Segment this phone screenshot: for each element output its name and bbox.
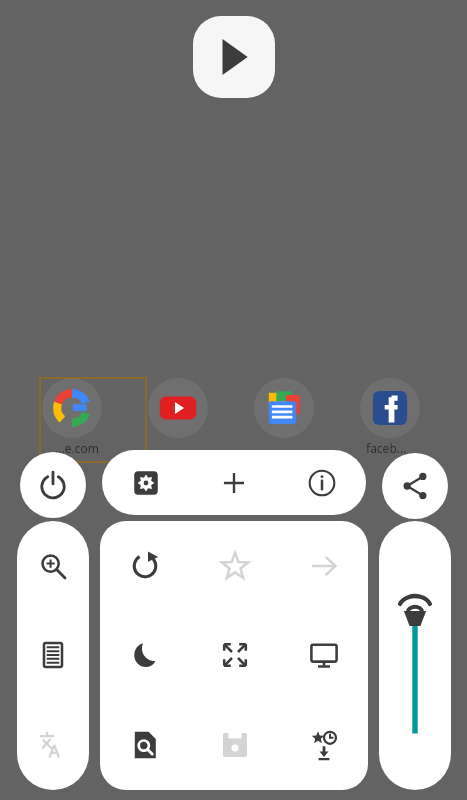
button[interactable]: Reader mode: [17, 610, 89, 700]
button[interactable]: Forward: [279, 521, 368, 610]
staticText: ...e.com: [55, 440, 99, 456]
button[interactable]: Zoom in: [17, 521, 89, 610]
button[interactable]: App: [42, 378, 102, 438]
button[interactable]: Desktop site: [279, 610, 368, 700]
button[interactable]: Bookmark: [190, 521, 279, 610]
button[interactable]: Brightness slider: [379, 521, 451, 790]
button[interactable]: Play Store: [193, 16, 275, 98]
button[interactable]: Reload: [100, 521, 190, 610]
button[interactable]: New tab: [190, 450, 278, 515]
button[interactable]: History and downloads: [279, 700, 368, 790]
button[interactable]: Translate: [17, 700, 89, 790]
button[interactable]: Find in page: [100, 700, 190, 790]
button[interactable]: App: [254, 378, 314, 438]
button[interactable]: Share: [382, 453, 448, 519]
button[interactable]: Page info: [278, 450, 366, 515]
staticText: faceb...: [366, 440, 407, 456]
button[interactable]: App: [148, 378, 208, 438]
button[interactable]: Dark mode: [100, 610, 190, 700]
button[interactable]: App: [360, 378, 420, 438]
button[interactable]: Save page: [190, 700, 279, 790]
button[interactable]: Fullscreen: [190, 610, 279, 700]
button[interactable]: Settings: [102, 450, 190, 515]
button[interactable]: Power: [20, 452, 86, 518]
